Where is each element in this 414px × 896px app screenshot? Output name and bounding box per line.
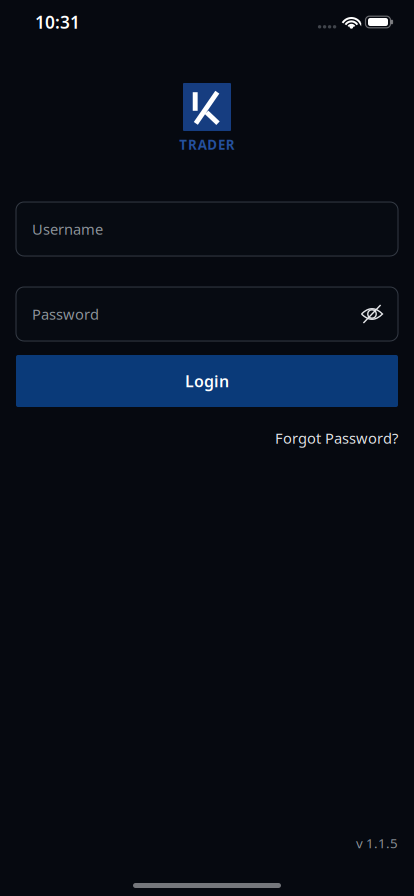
staticText: Username <box>32 219 103 239</box>
button[interactable]: Show password <box>360 303 398 325</box>
staticText: R <box>226 136 235 153</box>
staticText: T <box>179 136 187 153</box>
staticText: 10:31 <box>35 10 80 33</box>
staticText: Login <box>185 370 229 392</box>
staticText: v 1.1.5 <box>356 834 398 852</box>
staticText: A <box>198 136 207 153</box>
staticText: Forgot Password? <box>275 428 398 448</box>
staticText: D <box>207 136 217 153</box>
button[interactable]: Login <box>16 355 398 407</box>
staticText: Password <box>32 304 99 324</box>
button[interactable]: Forgot Password? <box>275 428 398 448</box>
staticText: E <box>218 136 225 153</box>
staticText: R <box>188 136 197 153</box>
